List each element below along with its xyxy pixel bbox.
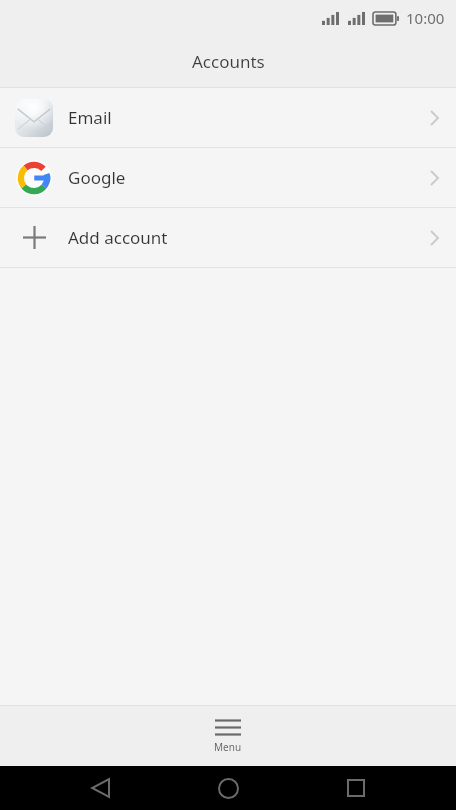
staticText: Menu <box>214 740 242 754</box>
staticText: 10:00 <box>406 8 445 28</box>
staticText: Google <box>68 166 412 189</box>
button[interactable]: Add account <box>0 208 456 267</box>
staticText: Accounts <box>192 50 265 73</box>
button[interactable]: Google <box>0 148 456 207</box>
staticText: Add account <box>68 226 412 249</box>
staticText: Email <box>68 106 412 129</box>
button[interactable]: Email <box>0 88 456 147</box>
button[interactable]: Recents <box>328 766 384 810</box>
button[interactable]: Back <box>72 766 128 810</box>
button[interactable]: Home <box>200 766 256 810</box>
button[interactable]: Menu <box>0 706 456 766</box>
